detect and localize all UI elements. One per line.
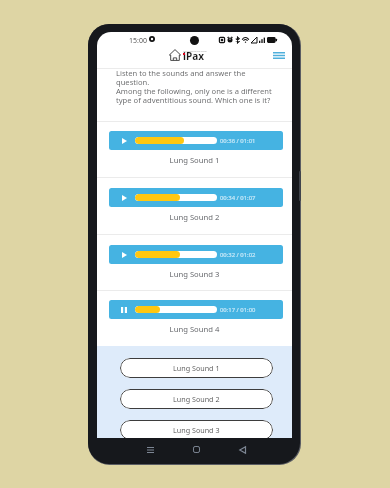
- staticText: 00:34 / 01:07: [220, 194, 256, 202]
- button[interactable]: 00:17 / 01:00: [109, 300, 283, 319]
- button[interactable]: Back: [235, 442, 250, 457]
- staticText: iPax: [183, 49, 204, 63]
- staticText: The inhaler for your health: [183, 50, 207, 53]
- staticText: 15:00: [129, 36, 147, 46]
- staticText: Lung Sound 2: [97, 212, 292, 222]
- button[interactable]: Lung Sound 2: [120, 389, 273, 409]
- staticText: Lung Sound 3: [97, 269, 292, 279]
- button[interactable]: Home: [189, 442, 204, 457]
- staticText: 00:17 / 01:00: [220, 306, 256, 314]
- staticText: Lung Sound 2: [173, 394, 220, 404]
- staticText: Lung Sound 1: [97, 155, 292, 165]
- button[interactable]: Lung Sound 1: [120, 358, 273, 378]
- button[interactable]: Menu: [269, 46, 289, 64]
- button[interactable]: 00:32 / 01:02: [109, 245, 283, 264]
- staticText: Lung Sound 4: [97, 324, 292, 334]
- staticText: 00:32 / 01:02: [220, 251, 256, 259]
- button[interactable]: Lung Sound 3: [120, 420, 273, 440]
- staticText: 00:36 / 01:01: [220, 137, 256, 145]
- button[interactable]: 00:36 / 01:01: [109, 131, 283, 150]
- button[interactable]: Recents: [143, 442, 158, 457]
- staticText: Lung Sound 3: [173, 425, 220, 435]
- button[interactable]: 00:34 / 01:07: [109, 188, 283, 207]
- staticText: Listen to the sounds and answer the ques…: [116, 68, 272, 105]
- staticText: Lung Sound 1: [173, 363, 220, 373]
